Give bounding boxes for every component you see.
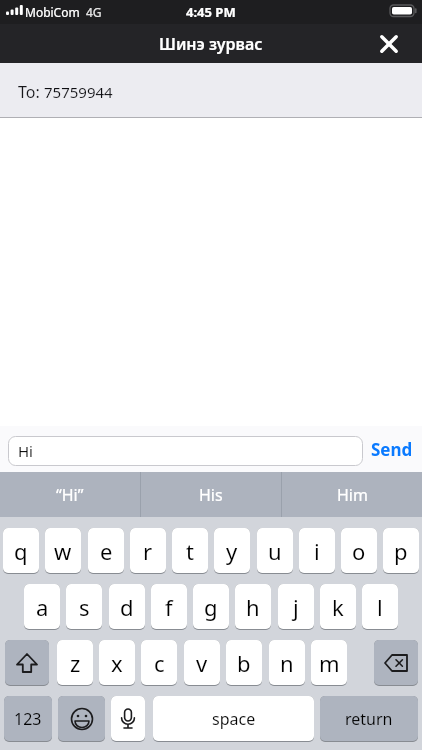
- button[interactable]: r: [130, 528, 166, 574]
- staticText: e: [100, 536, 113, 566]
- staticText: s: [79, 592, 90, 622]
- button[interactable]: [111, 696, 145, 742]
- button[interactable]: y: [214, 528, 250, 574]
- staticText: “Hi”: [56, 484, 84, 506]
- staticText: x: [111, 648, 123, 678]
- staticText: l: [377, 592, 383, 622]
- staticText: r: [143, 536, 153, 566]
- staticText: m: [319, 648, 340, 678]
- staticText: Him: [337, 484, 368, 506]
- staticText: o: [352, 536, 366, 566]
- button[interactable]: u: [257, 528, 293, 574]
- staticText: Hi: [18, 441, 33, 461]
- button[interactable]: t: [172, 528, 208, 574]
- staticText: return: [345, 708, 393, 730]
- button[interactable]: m: [311, 640, 347, 686]
- staticText: v: [196, 648, 208, 678]
- staticText: Шинэ зурвас: [159, 33, 263, 55]
- button[interactable]: q: [3, 528, 39, 574]
- button[interactable]: o: [341, 528, 377, 574]
- staticText: To:: [18, 81, 44, 103]
- button[interactable]: 123: [4, 696, 52, 742]
- button[interactable]: [372, 27, 406, 60]
- staticText: 4G: [86, 4, 102, 20]
- button[interactable]: w: [45, 528, 81, 574]
- staticText: 75759944: [44, 82, 113, 102]
- staticText: Send: [371, 438, 413, 461]
- button[interactable]: [58, 696, 105, 742]
- staticText: i: [314, 536, 320, 566]
- staticText: h: [246, 592, 260, 622]
- button[interactable]: d: [109, 584, 145, 630]
- staticText: c: [154, 648, 165, 678]
- staticText: y: [226, 536, 238, 566]
- button[interactable]: Send: [371, 438, 413, 461]
- button[interactable]: e: [88, 528, 124, 574]
- staticText: n: [280, 648, 294, 678]
- button[interactable]: s: [66, 584, 102, 630]
- button[interactable]: b: [226, 640, 262, 686]
- staticText: a: [36, 592, 49, 622]
- button[interactable]: p: [383, 528, 419, 574]
- button[interactable]: space: [153, 696, 314, 742]
- button[interactable]: k: [320, 584, 356, 630]
- staticText: z: [70, 648, 81, 678]
- button[interactable]: Him: [282, 472, 422, 517]
- staticText: t: [186, 536, 194, 566]
- button[interactable]: His: [141, 472, 281, 517]
- staticText: His: [199, 484, 223, 506]
- button[interactable]: j: [278, 584, 314, 630]
- staticText: w: [54, 536, 72, 566]
- staticText: u: [268, 536, 282, 566]
- button[interactable]: i: [299, 528, 335, 574]
- staticText: b: [237, 648, 251, 678]
- button[interactable]: z: [57, 640, 93, 686]
- button[interactable]: [374, 640, 418, 686]
- button[interactable]: h: [235, 584, 271, 630]
- staticText: k: [332, 592, 344, 622]
- button[interactable]: l: [362, 584, 398, 630]
- button[interactable]: a: [24, 584, 60, 630]
- staticText: space: [212, 708, 256, 730]
- staticText: 4:45 PM: [186, 3, 236, 21]
- staticText: MobiCom: [25, 4, 80, 20]
- button[interactable]: Hi: [8, 436, 363, 466]
- button[interactable]: g: [193, 584, 229, 630]
- button[interactable]: return: [320, 696, 418, 742]
- button[interactable]: f: [151, 584, 187, 630]
- button[interactable]: [5, 640, 49, 686]
- staticText: j: [293, 592, 299, 622]
- button[interactable]: “Hi”: [0, 472, 140, 517]
- staticText: p: [394, 536, 408, 566]
- button[interactable]: x: [99, 640, 135, 686]
- button[interactable]: n: [269, 640, 305, 686]
- staticText: d: [120, 592, 134, 622]
- staticText: g: [204, 592, 218, 622]
- button[interactable]: v: [184, 640, 220, 686]
- button[interactable]: c: [141, 640, 177, 686]
- staticText: f: [165, 592, 173, 622]
- staticText: q: [14, 536, 28, 566]
- staticText: 123: [14, 708, 42, 730]
